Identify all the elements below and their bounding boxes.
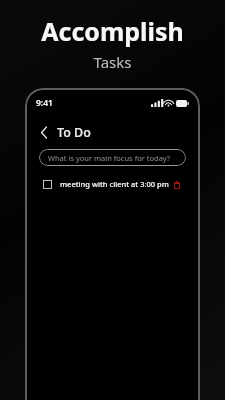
staticText: What is your main focus for today? bbox=[48, 153, 171, 163]
button[interactable]: Delete task bbox=[171, 179, 182, 190]
staticText: To Do bbox=[57, 124, 91, 141]
staticText: Accomplish bbox=[0, 14, 225, 48]
staticText: meeting with client at 3:00 pm bbox=[60, 179, 169, 189]
button[interactable]: What is your main focus for today? bbox=[39, 149, 186, 166]
button[interactable]: Toggle task complete bbox=[43, 175, 182, 193]
button[interactable]: Back bbox=[36, 124, 52, 140]
button[interactable]: Toggle task complete bbox=[43, 180, 52, 189]
staticText: Tasks bbox=[0, 52, 225, 72]
staticText: 9:41 bbox=[36, 97, 53, 109]
